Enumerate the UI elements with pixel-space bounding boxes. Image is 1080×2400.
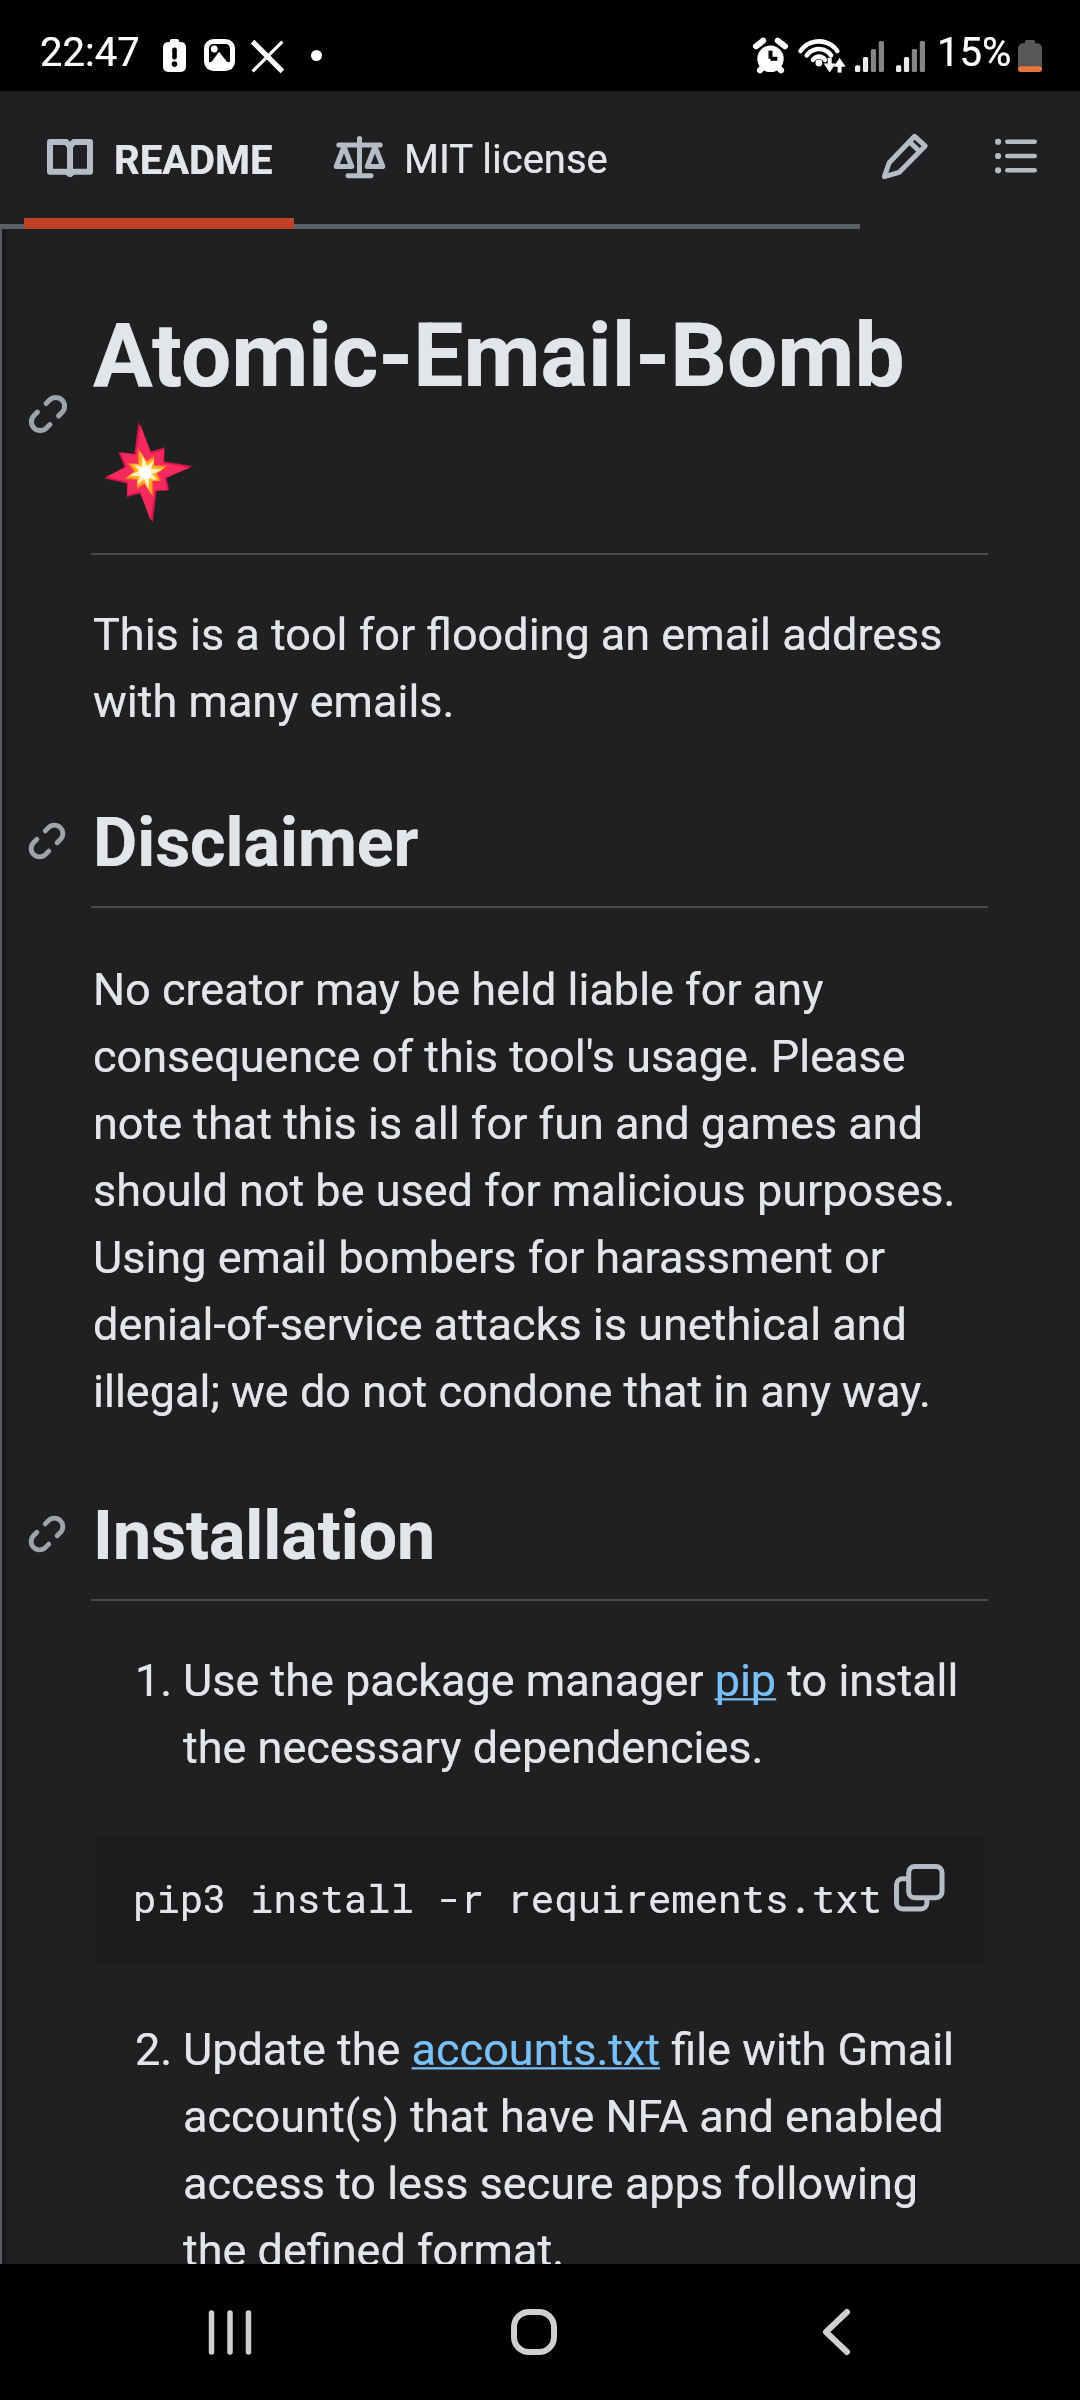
staticText: Update the accounts.txt file with Gmail …	[183, 2023, 973, 2277]
button[interactable]: MIT license	[305, 91, 630, 220]
button[interactable]: Home	[484, 2264, 584, 2400]
button[interactable]: Copy code	[882, 1851, 954, 1923]
button[interactable]: Table of contents	[960, 91, 1070, 220]
staticText: Disclaimer	[93, 803, 419, 883]
staticText: MIT license	[404, 136, 608, 183]
staticText: Use the package manager pip to install t…	[183, 1654, 973, 1774]
button[interactable]: Permalink to Atomic-Email-Bomb	[26, 392, 70, 436]
staticText: 2.	[135, 2023, 173, 2076]
staticText: README	[114, 137, 273, 184]
staticText: 1.	[135, 1654, 173, 1707]
staticText: This is a tool for flooding an email add…	[93, 608, 993, 728]
staticText: No creator may be held liable for any co…	[93, 963, 973, 1418]
button[interactable]: Permalink to Disclaimer	[26, 820, 68, 862]
staticText: Installation	[93, 1496, 436, 1576]
staticText: 22:47	[40, 29, 140, 76]
button[interactable]: Permalink to Installation	[26, 1513, 68, 1555]
button[interactable]: README	[24, 91, 294, 220]
staticText: pip3 install -r requirements.txt	[133, 1872, 882, 1923]
staticText: 15%	[937, 29, 1012, 76]
button[interactable]: Recent apps	[180, 2264, 280, 2400]
button[interactable]: Back	[786, 2264, 886, 2400]
button[interactable]: Edit	[850, 91, 960, 220]
staticText: Atomic-Email-Bomb	[93, 303, 905, 407]
